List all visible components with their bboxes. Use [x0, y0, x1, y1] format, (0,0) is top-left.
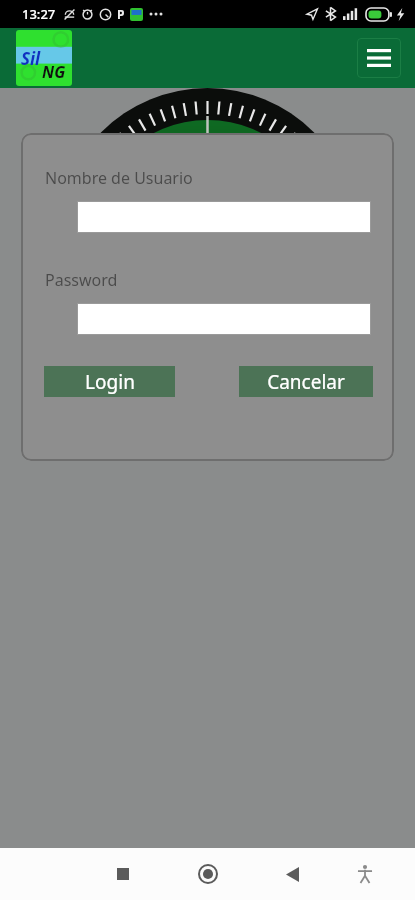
button[interactable]: Recent apps — [103, 854, 143, 894]
staticText: 13:27 — [22, 5, 56, 23]
button[interactable]: Menu — [357, 38, 401, 78]
button[interactable]: Accessibility — [345, 854, 385, 894]
staticText: Login — [85, 369, 135, 395]
staticText: P — [117, 6, 125, 22]
button[interactable]: Password field — [77, 303, 371, 335]
staticText: NG — [42, 61, 66, 83]
button[interactable]: Back — [272, 854, 312, 894]
button[interactable]: Login — [44, 366, 175, 397]
button[interactable]: Nombre de Usuario field — [77, 201, 371, 233]
button[interactable]: Home — [188, 854, 228, 894]
staticText: Password — [45, 269, 118, 291]
button[interactable]: Logo — [16, 30, 72, 86]
button[interactable]: Cancelar — [239, 366, 373, 397]
staticText: Cancelar — [267, 369, 345, 395]
staticText: Sil — [21, 47, 41, 70]
staticText: Nombre de Usuario — [45, 167, 193, 189]
